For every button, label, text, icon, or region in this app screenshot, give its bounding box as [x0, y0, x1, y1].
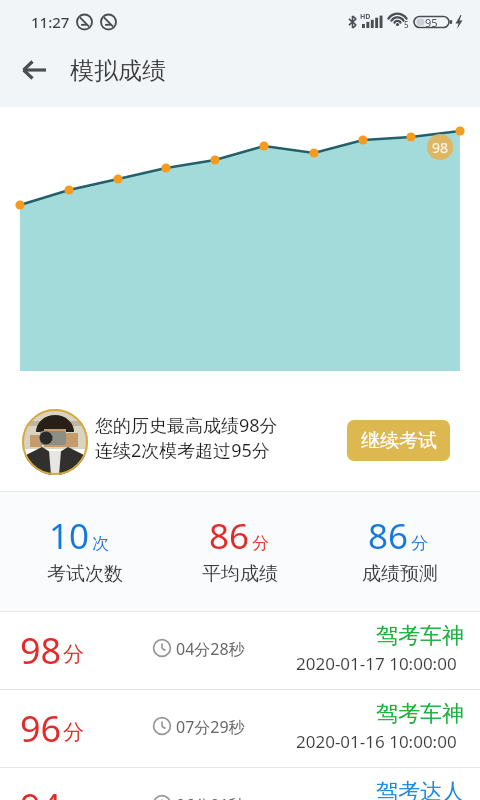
button[interactable]: [14, 53, 56, 89]
staticText: 2020-01-17 10:00:00: [296, 652, 457, 675]
staticText: 98: [432, 138, 449, 157]
staticText: 分: [252, 533, 269, 554]
button[interactable]: 86: [160, 505, 320, 600]
button[interactable]: 10: [5, 505, 165, 600]
staticText: 次: [92, 533, 109, 554]
staticText: 06分01秒: [176, 794, 245, 800]
staticText: 成绩预测: [362, 562, 438, 586]
staticText: 模拟成绩: [70, 56, 166, 86]
staticText: 04分28秒: [176, 638, 245, 660]
staticText: 95: [425, 15, 438, 30]
staticText: 您的历史最高成绩98分: [95, 413, 278, 438]
button[interactable]: 96: [0, 690, 480, 768]
staticText: 继续考试: [361, 429, 437, 453]
staticText: 分: [411, 533, 428, 554]
staticText: 10: [49, 512, 90, 560]
staticText: 96: [20, 704, 62, 753]
staticText: 98: [20, 626, 62, 675]
staticText: 5: [404, 19, 409, 30]
staticText: 驾考车神: [376, 622, 464, 650]
button[interactable]: 94: [0, 768, 480, 800]
staticText: 94: [20, 782, 62, 800]
staticText: 考试次数: [47, 562, 123, 586]
staticText: 驾考达人: [376, 778, 464, 800]
staticText: 连续2次模考超过95分: [95, 438, 270, 463]
staticText: 11:27: [31, 12, 70, 32]
staticText: 驾考车神: [376, 700, 464, 728]
button[interactable]: 继续考试: [347, 420, 450, 461]
staticText: 2020-01-16 10:00:00: [296, 730, 457, 753]
staticText: 86: [209, 512, 250, 560]
staticText: 分: [63, 719, 84, 745]
staticText: 平均成绩: [202, 562, 278, 586]
button[interactable]: 98: [0, 612, 480, 690]
staticText: 07分29秒: [176, 716, 245, 738]
button[interactable]: 86: [320, 505, 480, 600]
staticText: 分: [63, 641, 84, 667]
staticText: 86: [368, 512, 409, 560]
staticText: HD: [360, 12, 371, 22]
